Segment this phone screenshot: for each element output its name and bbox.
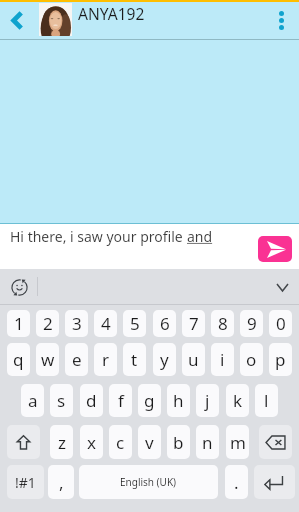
staticText: i [220,348,225,371]
button[interactable]: m [226,425,249,459]
button[interactable]: 2 [36,310,59,337]
staticText: 1 [14,312,24,335]
staticText: 5 [130,312,140,335]
staticText: k [233,389,243,412]
button[interactable]: z [50,425,73,459]
staticText: s [57,389,66,412]
staticText: l [264,389,269,412]
button[interactable]: w [36,343,59,376]
button[interactable]: 7 [182,310,205,337]
button[interactable]: s [50,384,73,417]
staticText: !#1 [15,473,36,492]
button[interactable]: 9 [240,310,263,337]
button[interactable]: English (UK) [79,465,218,499]
button[interactable]: a [21,384,44,417]
button[interactable]: k [226,384,249,417]
button[interactable]: f [109,384,132,417]
button[interactable]: q [7,343,30,376]
staticText: u [188,348,199,371]
staticText: 9 [247,312,257,335]
button[interactable]: u [182,343,205,376]
staticText: c [116,431,125,454]
staticText: o [246,348,257,371]
staticText: d [86,389,97,412]
staticText: and [187,227,213,246]
staticText: r [102,348,110,371]
button[interactable]: x [80,425,103,459]
button[interactable]: 0 [269,310,292,337]
button[interactable]: 8 [211,310,234,337]
button[interactable]: n [196,425,219,459]
button[interactable]: e [65,343,88,376]
button[interactable]: r [94,343,117,376]
staticText: z [58,431,66,454]
button[interactable]: b [167,425,190,459]
staticText: h [173,389,184,412]
button[interactable]: 6 [153,310,176,337]
button[interactable]: !#1 [7,465,44,499]
button[interactable]: t [123,343,146,376]
staticText: a [28,389,38,412]
staticText: . [234,471,239,494]
button[interactable]: Backspace [259,425,292,459]
button[interactable]: v [138,425,161,459]
staticText: n [202,431,213,454]
staticText: p [275,348,286,371]
button[interactable]: Back [0,2,33,38]
staticText: 6 [160,312,170,335]
button[interactable]: o [240,343,263,376]
button[interactable]: h [167,384,190,417]
button[interactable]: Enter [254,465,295,499]
staticText: t [131,348,138,371]
staticText: ANYA192 [78,3,145,24]
staticText: 3 [72,312,82,335]
staticText: v [145,431,154,454]
button[interactable]: y [153,343,176,376]
staticText: English (UK) [120,475,177,489]
button[interactable]: j [196,384,219,417]
button[interactable]: Hide keyboard [267,269,297,305]
staticText: x [87,431,96,454]
button[interactable]: Emoji [1,269,38,305]
button[interactable]: g [138,384,161,417]
button[interactable]: p [269,343,292,376]
button[interactable]: More options [263,2,299,38]
staticText: 0 [276,312,286,335]
button[interactable]: , [48,465,74,499]
staticText: Hi there, i saw your profile [10,227,187,246]
button[interactable]: 4 [94,310,117,337]
staticText: b [173,431,184,454]
staticText: , [59,471,64,494]
button[interactable]: Shift [7,425,40,459]
staticText: g [144,389,155,412]
button[interactable]: 5 [123,310,146,337]
button[interactable]: Send [258,236,292,262]
staticText: q [13,348,24,371]
button[interactable]: l [255,384,278,417]
button[interactable]: 3 [65,310,88,337]
staticText: e [72,348,82,371]
button[interactable]: d [80,384,103,417]
button[interactable]: i [211,343,234,376]
staticText: y [160,348,169,371]
staticText: w [41,348,55,371]
staticText: j [205,389,210,412]
staticText: f [118,389,124,412]
staticText: 2 [43,312,53,335]
button[interactable]: c [109,425,132,459]
button[interactable]: 1 [7,310,30,337]
staticText: m [230,431,246,454]
staticText: 8 [218,312,228,335]
staticText: 4 [101,312,111,335]
button[interactable]: . [225,465,248,499]
staticText: 7 [189,312,199,335]
